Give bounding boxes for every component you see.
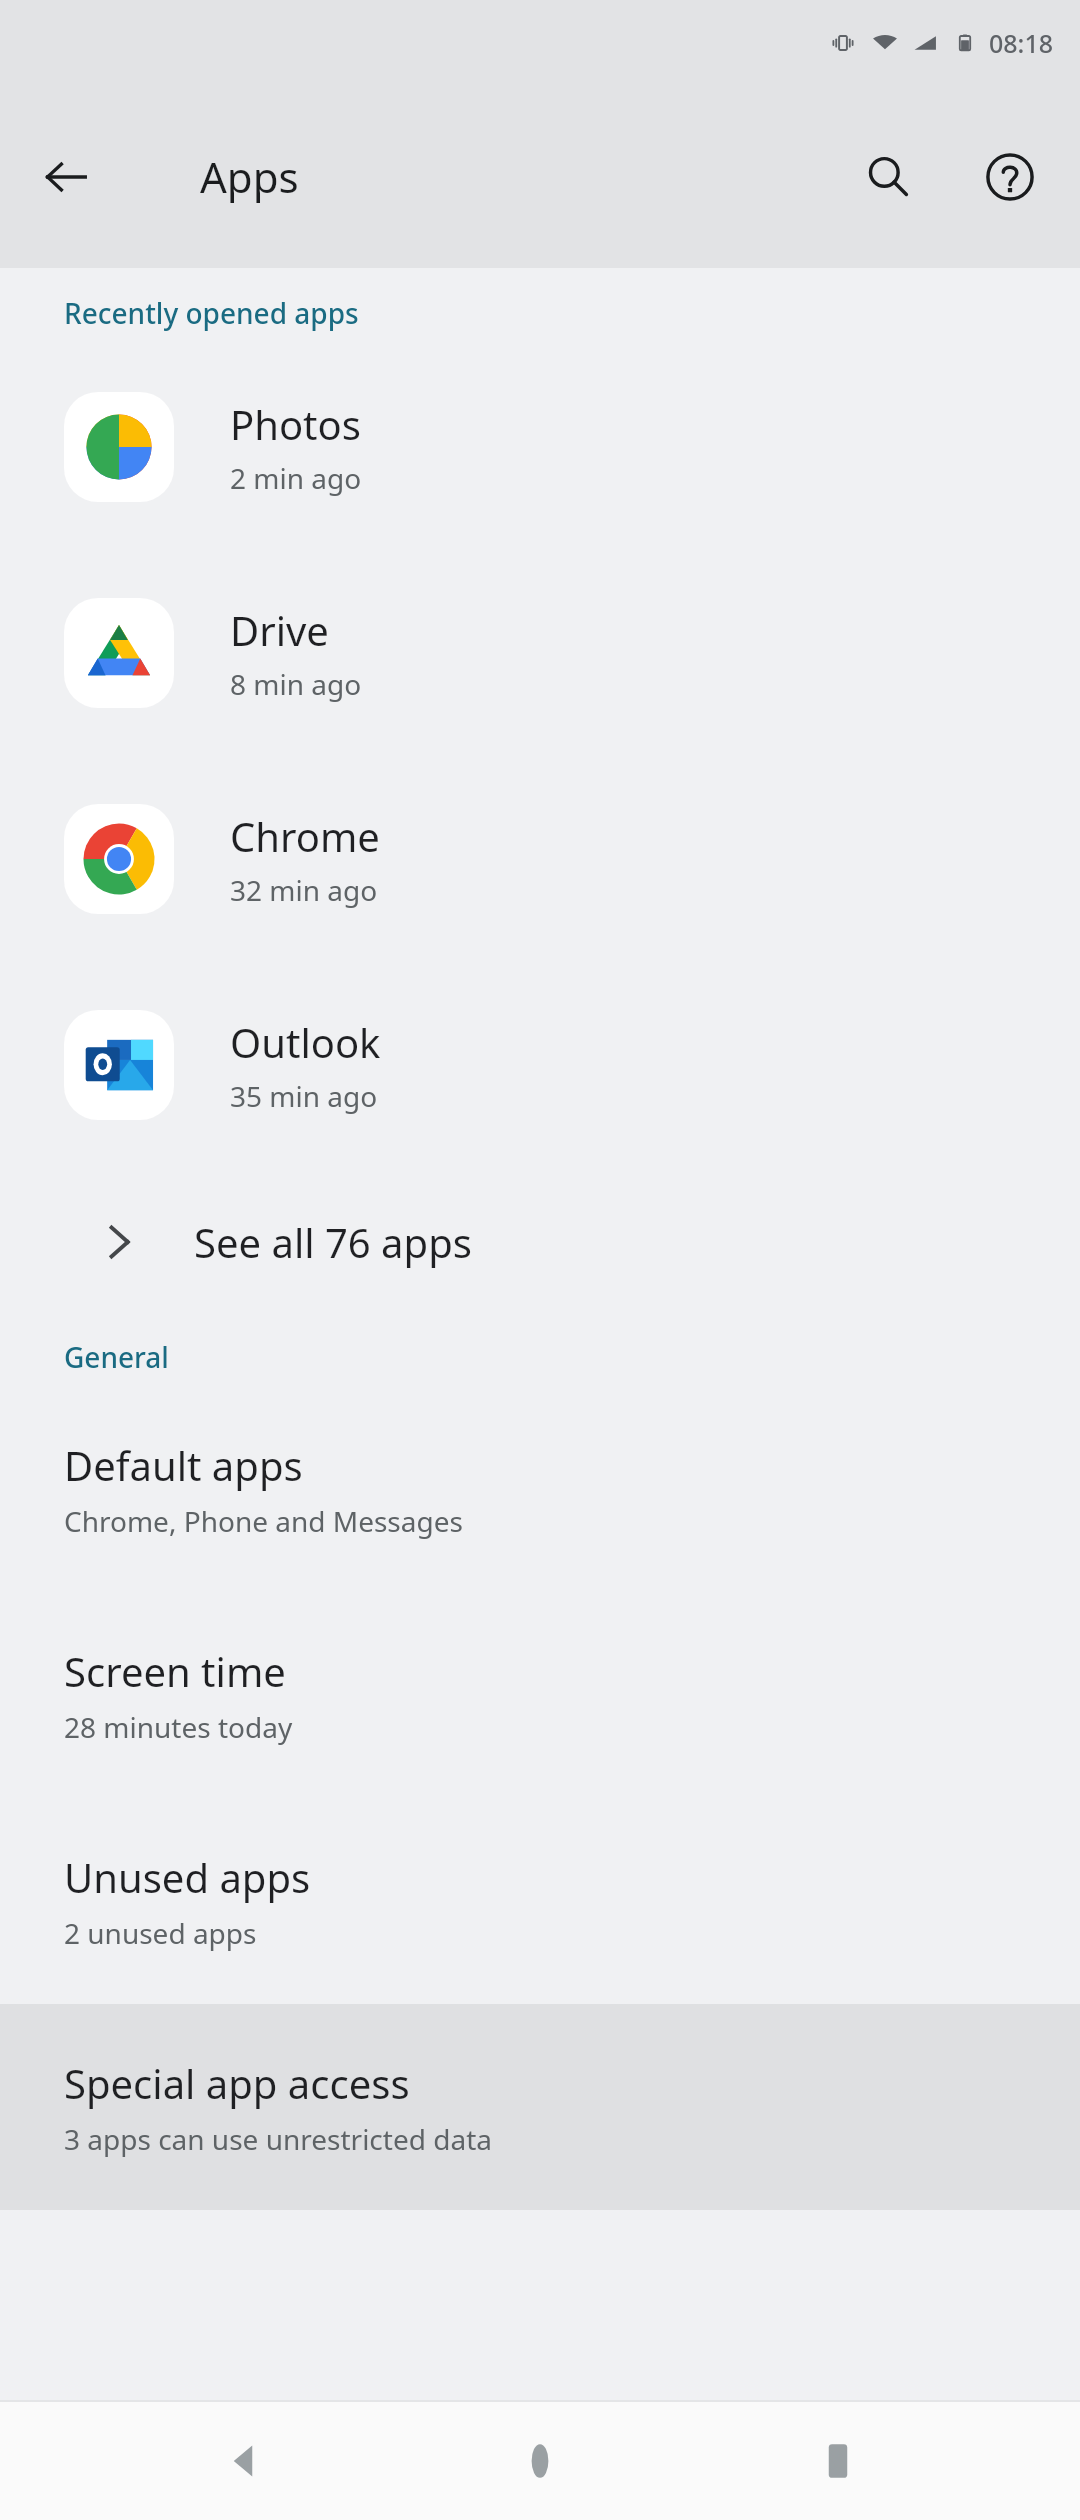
staticText: See all 76 apps [194,1215,472,1269]
staticText: Recently opened apps [64,294,359,332]
button[interactable]: Drive [0,550,1080,756]
button[interactable]: Help [964,131,1056,223]
staticText: Drive [230,603,329,657]
staticText: Photos [230,397,361,451]
staticText: Special app access [64,2056,410,2110]
button[interactable]: Special app access [0,2004,1080,2210]
button[interactable]: Back [22,133,110,221]
button[interactable]: Outlook [0,962,1080,1168]
button[interactable]: Chrome [0,756,1080,962]
staticText: Unused apps [64,1850,311,1904]
button[interactable]: Default apps [0,1386,1080,1592]
button[interactable]: Search [842,131,934,223]
staticText: Outlook [230,1015,381,1069]
button[interactable]: Photos [0,344,1080,550]
staticText: Chrome [230,809,380,863]
staticText: Default apps [64,1438,303,1492]
staticText: 08:18 [989,26,1054,60]
staticText: 32 min ago [230,871,378,909]
button[interactable]: Recent apps [783,2406,893,2516]
button[interactable]: Unused apps [0,1798,1080,2004]
staticText: 2 min ago [230,459,362,497]
staticText: 8 min ago [230,665,362,703]
button[interactable]: See all 76 apps [0,1174,1080,1310]
staticText: Screen time [64,1644,286,1698]
staticText: Apps [200,148,299,205]
staticText: 3 apps can use unrestricted data [64,2120,492,2158]
staticText: Chrome, Phone and Messages [64,1502,463,1540]
button[interactable]: Home [485,2406,595,2516]
button[interactable]: Back [188,2406,298,2516]
staticText: 35 min ago [230,1077,378,1115]
staticText: 28 minutes today [64,1708,293,1746]
button[interactable]: Screen time [0,1592,1080,1798]
staticText: General [64,1338,169,1376]
staticText: 2 unused apps [64,1914,257,1952]
